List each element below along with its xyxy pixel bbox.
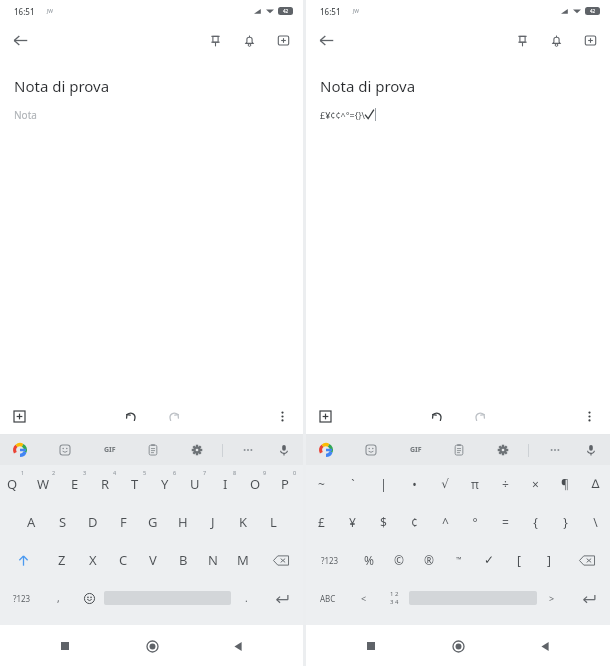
button[interactable]: I	[213, 465, 243, 503]
button[interactable]: ?123	[0, 579, 43, 617]
button[interactable]: $	[368, 503, 399, 541]
button[interactable]: M	[228, 541, 258, 579]
button[interactable]: Home	[443, 631, 473, 661]
button[interactable]: X	[77, 541, 108, 579]
button[interactable]: Archive	[271, 28, 295, 52]
button[interactable]: S	[47, 503, 78, 541]
button[interactable]: Back	[223, 631, 253, 661]
button[interactable]: Emoji	[74, 579, 104, 617]
button[interactable]: Backspace	[258, 541, 303, 579]
button[interactable]: B	[168, 541, 198, 579]
button[interactable]: Clipboard	[142, 439, 164, 461]
button[interactable]: Z	[46, 541, 77, 579]
button[interactable]: {	[520, 503, 550, 541]
button[interactable]: Redo	[162, 405, 184, 427]
button[interactable]: ✓	[474, 541, 504, 579]
button[interactable]: O	[243, 465, 273, 503]
button[interactable]: W	[31, 465, 62, 503]
button[interactable]: F	[108, 503, 138, 541]
button[interactable]: Back	[6, 26, 34, 54]
button[interactable]: ®	[414, 541, 444, 579]
button[interactable]: ™	[444, 541, 474, 579]
button[interactable]: ©	[384, 541, 414, 579]
button[interactable]: Stickers	[54, 439, 76, 461]
button[interactable]: =	[490, 503, 520, 541]
button[interactable]: Recents	[50, 631, 80, 661]
button[interactable]: Settings	[186, 439, 208, 461]
button[interactable]: Y	[153, 465, 183, 503]
button[interactable]: Enter	[261, 579, 303, 617]
button[interactable]: L	[258, 503, 288, 541]
button[interactable]: \	[580, 503, 610, 541]
button[interactable]: Add	[8, 405, 30, 427]
button[interactable]: Backspace	[564, 541, 610, 579]
button[interactable]: V	[138, 541, 168, 579]
button[interactable]: |	[368, 465, 399, 503]
button[interactable]: ∆	[580, 465, 610, 503]
button[interactable]: K	[228, 503, 258, 541]
button[interactable]: Enter	[567, 579, 610, 617]
button[interactable]: >	[537, 579, 567, 617]
button[interactable]: ¶	[550, 465, 580, 503]
button[interactable]: Google	[314, 438, 338, 462]
button[interactable]: GIF	[404, 439, 428, 461]
button[interactable]: A	[16, 503, 47, 541]
button[interactable]: Reminder	[237, 28, 261, 52]
button[interactable]: √	[430, 465, 460, 503]
button[interactable]: Reminder	[544, 28, 568, 52]
button[interactable]: ÷	[490, 465, 520, 503]
button[interactable]: More	[544, 439, 566, 461]
button[interactable]: Undo	[120, 405, 142, 427]
button[interactable]: Settings	[492, 439, 514, 461]
button[interactable]: N	[198, 541, 228, 579]
button[interactable]: E	[62, 465, 93, 503]
button[interactable]: Undo	[426, 405, 448, 427]
button[interactable]: Pin	[203, 28, 227, 52]
button[interactable]: Stickers	[360, 439, 382, 461]
button[interactable]: H	[168, 503, 198, 541]
button[interactable]: R	[93, 465, 123, 503]
button[interactable]: Voice input	[580, 439, 602, 461]
button[interactable]: ¢	[399, 503, 430, 541]
button[interactable]: Google	[8, 438, 32, 462]
button[interactable]: ABC	[306, 579, 349, 617]
button[interactable]: More options	[578, 405, 600, 427]
button[interactable]: }	[550, 503, 580, 541]
button[interactable]: G	[138, 503, 168, 541]
button[interactable]: C	[108, 541, 138, 579]
button[interactable]: Recents	[356, 631, 386, 661]
button[interactable]: 1 2	[379, 579, 409, 617]
button[interactable]: D	[78, 503, 108, 541]
button[interactable]: ,	[43, 579, 74, 617]
button[interactable]: Q	[0, 465, 31, 503]
button[interactable]: Shift	[0, 541, 46, 579]
button[interactable]: π	[460, 465, 490, 503]
button[interactable]: [	[504, 541, 534, 579]
button[interactable]: GIF	[98, 439, 122, 461]
button[interactable]: P	[273, 465, 303, 503]
button[interactable]: <	[349, 579, 379, 617]
button[interactable]: ^	[430, 503, 460, 541]
button[interactable]: %	[353, 541, 384, 579]
button[interactable]: More options	[271, 405, 293, 427]
button[interactable]: ]	[534, 541, 564, 579]
button[interactable]: £	[306, 503, 337, 541]
button[interactable]: T	[123, 465, 153, 503]
button[interactable]: Clipboard	[448, 439, 470, 461]
button[interactable]: ¥	[337, 503, 368, 541]
button[interactable]: Back	[312, 26, 340, 54]
button[interactable]: Pin	[510, 28, 534, 52]
button[interactable]: Voice input	[273, 439, 295, 461]
button[interactable]: U	[183, 465, 213, 503]
button[interactable]: `	[337, 465, 368, 503]
button[interactable]: ?123	[306, 541, 353, 579]
button[interactable]: Back	[530, 631, 560, 661]
button[interactable]: J	[198, 503, 228, 541]
button[interactable]: .	[231, 579, 261, 617]
button[interactable]: Redo	[468, 405, 490, 427]
button[interactable]: °	[460, 503, 490, 541]
button[interactable]: •	[399, 465, 430, 503]
button[interactable]: More	[237, 439, 259, 461]
